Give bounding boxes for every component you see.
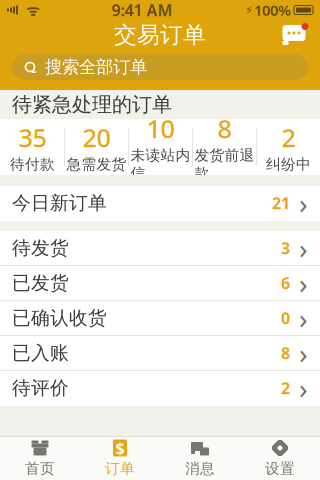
staticText: 今日新订单 [12, 191, 107, 214]
button[interactable]: 20 [64, 119, 128, 175]
staticText: 待紧急处理的订单 [12, 92, 172, 117]
staticText: › [299, 299, 308, 337]
staticText: 急需发货 [66, 155, 126, 173]
button[interactable]: 搜索全部订单 [12, 54, 308, 80]
staticText: 设置 [265, 459, 295, 477]
staticText: › [299, 264, 308, 302]
staticText: 消息 [185, 459, 215, 477]
staticText: › [299, 334, 308, 372]
staticText: 2 [281, 121, 295, 154]
staticText: › [299, 229, 308, 267]
staticText: 发货前退款 [194, 146, 254, 182]
staticText: 首页 [25, 459, 55, 477]
button[interactable]: 设置 [240, 437, 320, 480]
staticText: 21 [272, 192, 290, 214]
button[interactable]: 消息 [160, 437, 240, 480]
button[interactable]: 待评价 [0, 371, 320, 406]
staticText: 10 [146, 112, 174, 145]
staticText: 9:41 AM [111, 0, 172, 21]
staticText: › [299, 369, 308, 407]
staticText: 未读站内信 [130, 146, 190, 182]
button[interactable]: 已发货 [0, 266, 320, 301]
staticText: 待评价 [12, 376, 69, 399]
staticText: ᯤ [18, 0, 39, 20]
button[interactable]: 2 [256, 119, 320, 175]
staticText: $ [115, 437, 124, 459]
button[interactable]: 8 [192, 119, 256, 175]
button[interactable]: 10 [128, 119, 192, 175]
staticText: 纠纷中 [266, 155, 311, 173]
staticText: 100% [254, 0, 291, 20]
staticText: 订单 [105, 459, 135, 477]
button[interactable]: 35 [0, 119, 64, 175]
button[interactable]: Messages [277, 21, 311, 49]
staticText: 待付款 [10, 155, 55, 173]
button[interactable]: 已入账 [0, 336, 320, 371]
staticText: 0 [281, 307, 290, 329]
button[interactable]: 今日新订单 [0, 186, 320, 221]
staticText: 20 [82, 121, 110, 154]
staticText: 2 [281, 377, 290, 399]
staticText: ⚡︎ [245, 3, 253, 17]
button[interactable]: 已确认收货 [0, 301, 320, 336]
staticText: 35 [18, 121, 46, 154]
staticText: 已确认收货 [12, 306, 107, 329]
staticText: 搜索全部订单 [45, 56, 147, 78]
staticText: 8 [281, 342, 290, 364]
staticText: 交易订单 [114, 21, 206, 49]
staticText: 6 [281, 272, 290, 294]
button[interactable]: 首页 [0, 437, 80, 480]
staticText: 已入账 [12, 341, 69, 364]
button[interactable]: $ [80, 437, 160, 480]
staticText: › [299, 184, 308, 222]
staticText: 8 [217, 112, 231, 145]
staticText: 3 [281, 237, 290, 259]
button[interactable]: 待发货 [0, 231, 320, 266]
staticText: 待发货 [12, 236, 69, 259]
staticText: 已发货 [12, 271, 69, 294]
